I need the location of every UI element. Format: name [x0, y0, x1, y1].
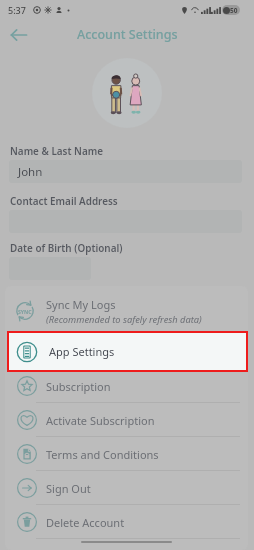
staticText: 50	[230, 6, 238, 15]
button[interactable]: Delete Account	[0, 505, 254, 539]
staticText: Sync My Logs	[46, 297, 116, 312]
staticText: App Settings	[49, 344, 115, 359]
staticText: SYNC	[18, 308, 32, 315]
staticText: Name & Last Name	[10, 144, 103, 157]
staticText: John	[18, 164, 43, 180]
button[interactable]: App Settings	[9, 333, 246, 370]
staticText: Account Settings	[77, 26, 178, 43]
staticText: Contact Email Address	[10, 194, 118, 207]
button[interactable]: Activate Subscription	[0, 403, 254, 437]
staticText: 5:37	[8, 4, 26, 16]
staticText: Date of Birth (Optional)	[10, 241, 123, 254]
button[interactable]: John	[9, 160, 242, 183]
button[interactable]: Back	[8, 24, 30, 46]
staticText: Terms and Conditions	[46, 447, 159, 462]
staticText: Delete Account	[46, 515, 125, 530]
button[interactable]: Subscription	[0, 369, 254, 403]
staticText: Activate Subscription	[46, 413, 155, 428]
button[interactable]: Sign Out	[0, 471, 254, 505]
button[interactable]: SYNC	[0, 292, 254, 330]
staticText: (Recommended to safely refresh data)	[46, 313, 202, 326]
staticText: Subscription	[46, 379, 111, 394]
button[interactable]: Terms and Conditions	[0, 437, 254, 471]
staticText: Sign Out	[46, 481, 91, 496]
